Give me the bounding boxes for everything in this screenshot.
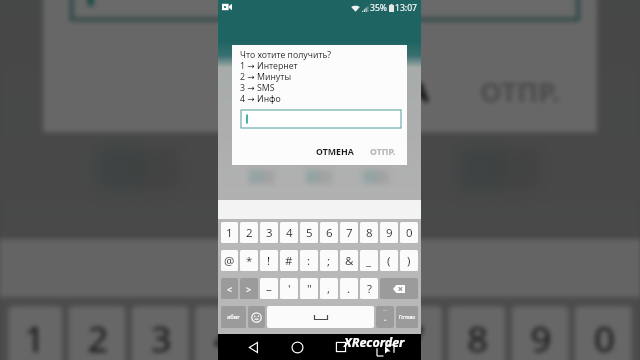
button[interactable]: 3 <box>260 222 278 243</box>
button[interactable]: Home <box>272 334 322 360</box>
button[interactable]: 7 <box>385 306 442 360</box>
staticText: абвг <box>227 313 240 321</box>
button[interactable]: 2 <box>68 306 125 360</box>
button[interactable]: _ <box>360 250 378 271</box>
staticText: ОТПР. <box>480 74 562 111</box>
button[interactable]: ! <box>260 250 278 271</box>
button[interactable]: ОТМЕНА <box>296 65 442 120</box>
button[interactable]: 2 <box>240 222 258 243</box>
staticText: ' <box>288 281 291 297</box>
button[interactable]: 6 <box>320 222 338 243</box>
staticText: 6 <box>341 315 363 360</box>
button[interactable]: 9 <box>380 222 398 243</box>
staticText: 3 <box>266 225 273 241</box>
staticText: 3 <box>151 315 173 360</box>
staticText: 2 <box>246 225 253 241</box>
button[interactable]: 3 <box>132 306 189 360</box>
staticText: ) <box>407 253 411 269</box>
staticText: 8 <box>366 225 373 241</box>
button[interactable]: 5 <box>258 306 315 360</box>
button[interactable]: Space <box>267 306 374 328</box>
button[interactable]: 1 <box>221 222 238 243</box>
staticText: 35% <box>370 2 387 14</box>
button[interactable]: 8 <box>448 306 505 360</box>
staticText: _ <box>366 253 372 269</box>
staticText: < <box>227 283 233 295</box>
staticText: , <box>327 281 331 297</box>
staticText: 1 <box>226 225 233 241</box>
button[interactable]: 8 <box>360 222 378 243</box>
staticText: 8 <box>467 315 489 360</box>
staticText: 4 <box>214 315 236 360</box>
button[interactable]: 0 <box>575 306 632 360</box>
button[interactable]: Recents <box>316 334 366 360</box>
button[interactable]: , <box>320 278 338 299</box>
button[interactable]: 1 <box>8 306 62 360</box>
staticText: 6 <box>326 225 333 241</box>
button[interactable]: Recording <box>220 0 234 14</box>
button[interactable]: 7 <box>340 222 358 243</box>
staticText: ... <box>383 306 388 313</box>
button[interactable]: 5 <box>300 222 318 243</box>
button[interactable]: " <box>300 278 318 299</box>
staticText: 7 <box>346 225 353 241</box>
button[interactable]: ОТПР. <box>467 65 575 120</box>
staticText: ОТМЕНА <box>316 146 354 158</box>
staticText: Что хотите получить? 1 → Интернет 2 → Ми… <box>240 49 332 105</box>
button[interactable]: : <box>300 250 318 271</box>
staticText: 7 <box>404 315 426 360</box>
staticText: 5 <box>306 225 313 241</box>
staticText: 13:07 <box>395 2 417 14</box>
staticText: # <box>285 253 293 269</box>
button[interactable]: абвг <box>221 306 246 328</box>
button[interactable]: ) <box>400 250 418 271</box>
staticText: " <box>307 281 312 297</box>
staticText: 4 <box>286 225 293 241</box>
staticText: XRecorder <box>344 334 405 351</box>
staticText: ? <box>367 281 372 297</box>
button[interactable]: > <box>240 278 258 299</box>
staticText: 9 <box>531 315 553 360</box>
button[interactable]: & <box>340 250 358 271</box>
button[interactable]: . <box>340 278 358 299</box>
button[interactable]: 6 <box>322 306 379 360</box>
staticText: . <box>384 311 387 324</box>
button[interactable]: Backspace <box>380 278 418 299</box>
button[interactable]: ' <box>280 278 298 299</box>
button[interactable]: ... <box>376 306 394 328</box>
staticText: 2 <box>87 315 110 360</box>
button[interactable]: 9 <box>512 306 569 360</box>
staticText: ( <box>387 253 391 269</box>
staticText: @ <box>224 253 235 269</box>
staticText: ОТПР. <box>370 146 396 158</box>
button[interactable]: < <box>221 278 238 299</box>
staticText: ! <box>267 253 271 269</box>
button[interactable]: # <box>280 250 298 271</box>
button[interactable]: @ <box>221 250 238 271</box>
staticText: ; <box>327 253 331 269</box>
staticText: : <box>307 253 311 269</box>
staticText: – <box>266 281 272 297</box>
button[interactable]: ? <box>360 278 378 299</box>
staticText: 1 <box>24 315 46 360</box>
staticText: 0 <box>406 225 413 241</box>
staticText: > <box>246 283 252 295</box>
button[interactable]: 0 <box>400 222 418 243</box>
button[interactable]: 4 <box>280 222 298 243</box>
button[interactable]: ОТМЕНА <box>312 143 358 161</box>
staticText: & <box>345 253 354 269</box>
button[interactable]: Готово <box>396 306 418 328</box>
staticText: 0 <box>594 315 616 360</box>
button[interactable]: – <box>260 278 278 299</box>
staticText: ОТМЕНА <box>309 74 429 111</box>
button[interactable]: * <box>240 250 258 271</box>
button[interactable]: Back <box>228 334 278 360</box>
staticText: 9 <box>386 225 393 241</box>
button[interactable]: ; <box>320 250 338 271</box>
staticText: * <box>246 253 253 269</box>
button[interactable]: 4 <box>195 306 252 360</box>
button[interactable]: Emoji <box>248 306 265 328</box>
button[interactable]: ( <box>380 250 398 271</box>
staticText: Готово <box>399 314 416 321</box>
button[interactable]: ОТПР. <box>366 143 400 161</box>
